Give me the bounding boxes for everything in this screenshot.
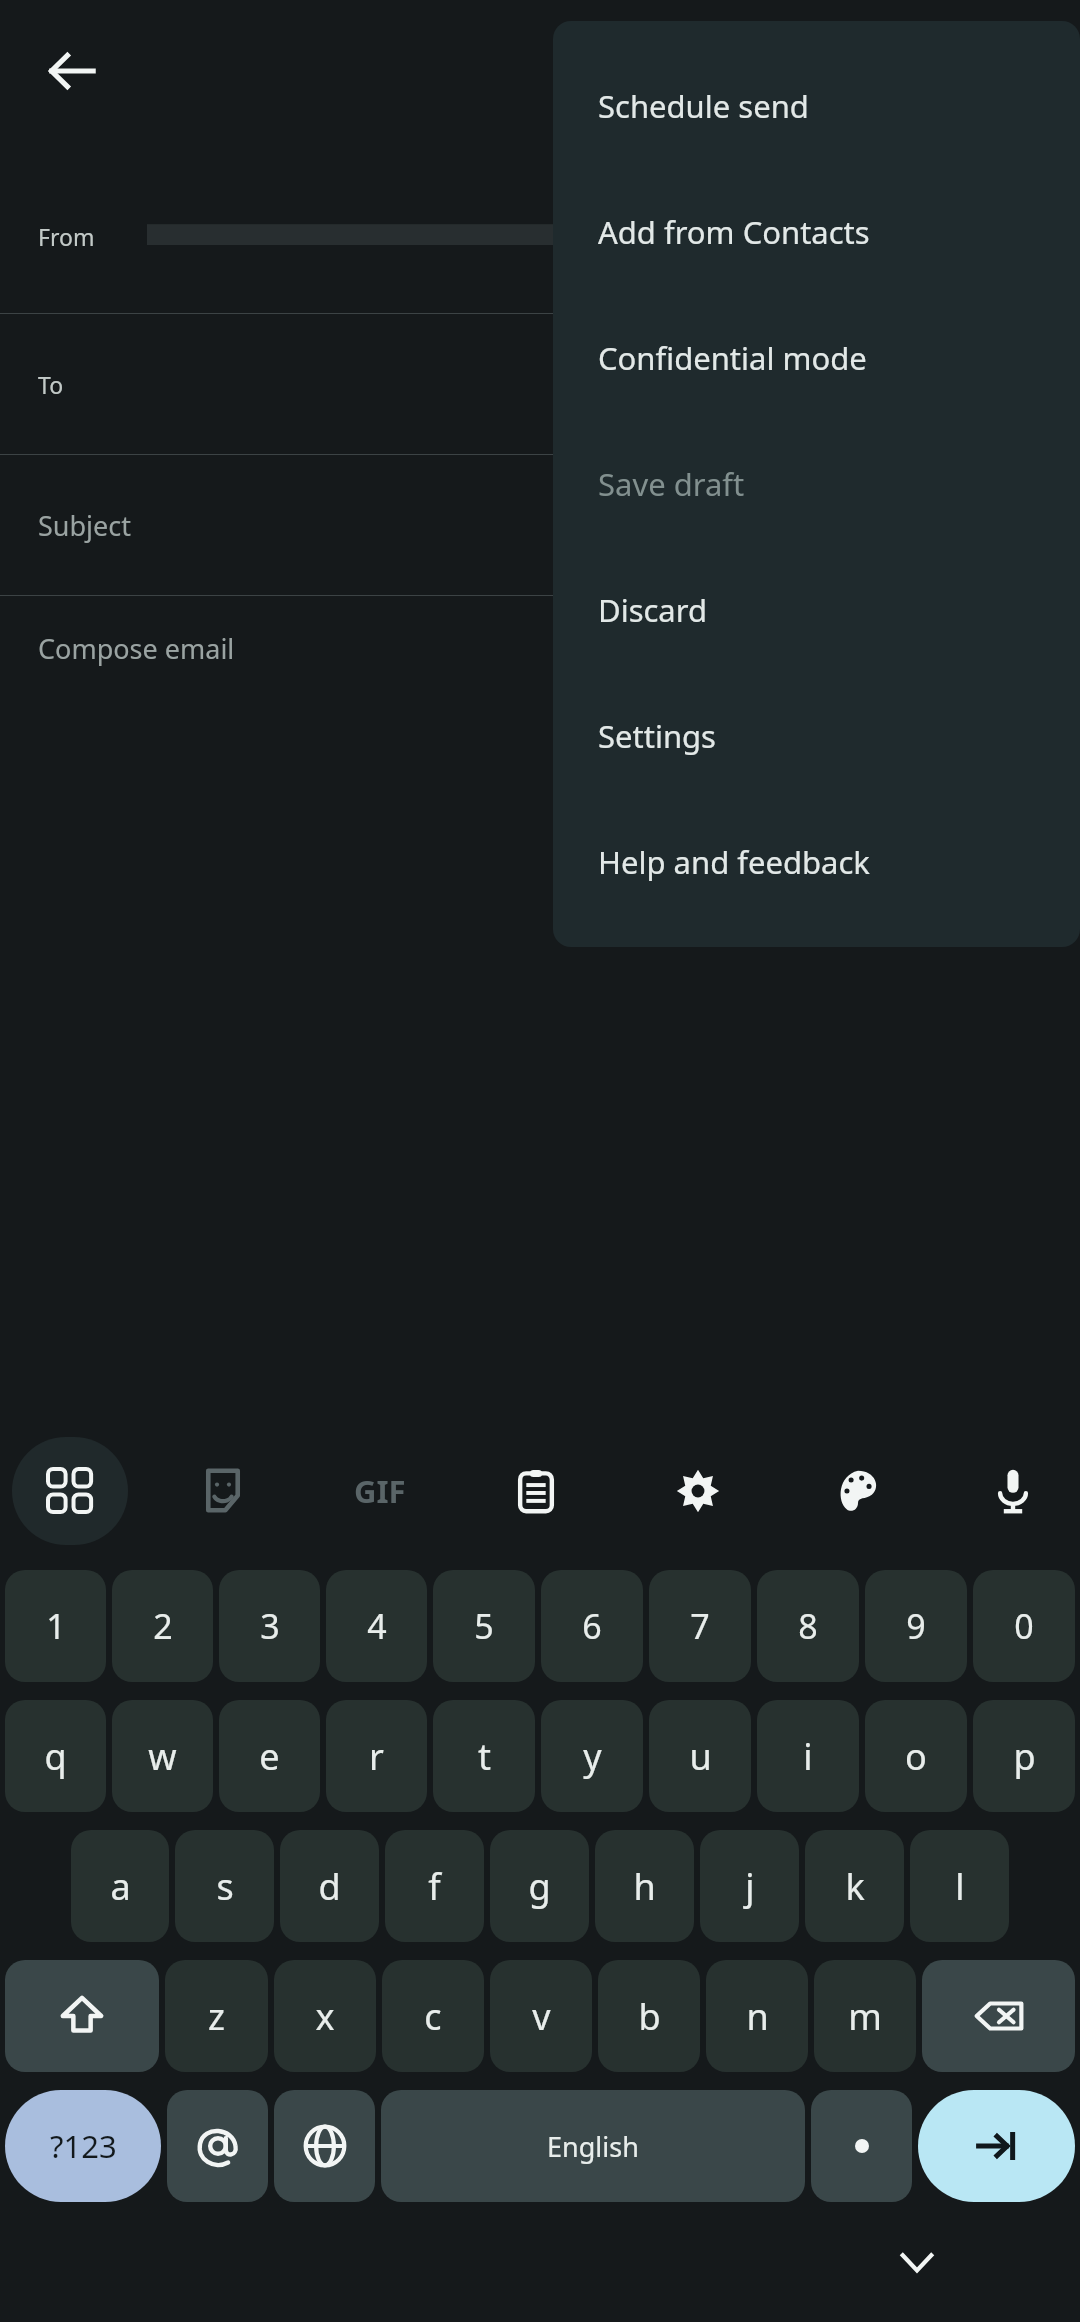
button[interactable]: j [700,1830,799,1942]
staticText: ?123 [50,2125,117,2167]
staticText: To [38,369,64,400]
button[interactable]: Confidential mode [553,295,1080,421]
button[interactable]: k [805,1830,904,1942]
staticText: 4 [367,1603,387,1649]
button[interactable]: f [385,1830,484,1942]
staticText: 5 [474,1603,494,1649]
button[interactable]: 9 [865,1570,967,1682]
button[interactable]: Subject [0,455,1080,595]
staticText: 0 [1014,1603,1034,1649]
button[interactable]: Compose email [0,596,1080,756]
button[interactable]: Settings [640,1437,756,1545]
staticText: w [148,1732,177,1781]
staticText: Discard [598,589,707,631]
button[interactable]: Apps [12,1437,128,1545]
staticText: Add from Contacts [598,211,870,253]
staticText: c [424,1992,442,2041]
staticText: GIF [354,1470,406,1512]
staticText: d [318,1862,341,1911]
button[interactable]: Add from Contacts [553,169,1080,295]
button[interactable]: i [757,1700,859,1812]
staticText: a [110,1862,131,1911]
button[interactable]: t [433,1700,535,1812]
button[interactable]: a [71,1830,169,1942]
button[interactable]: Backspace [922,1960,1075,2072]
button[interactable]: m [814,1960,916,2072]
button[interactable]: n [706,1960,808,2072]
button[interactable]: Stickers [165,1437,281,1545]
staticText: 9 [906,1603,926,1649]
button[interactable]: Switch language [274,2090,375,2202]
button[interactable]: 1 [5,1570,106,1682]
button[interactable]: Schedule send [553,43,1080,169]
staticText: y [583,1732,602,1781]
button[interactable]: To [0,314,1080,454]
button[interactable]: s [175,1830,274,1942]
staticText: l [955,1862,965,1911]
button[interactable]: r [326,1700,427,1812]
button[interactable]: Save draft [553,421,1080,547]
button[interactable]: 8 [757,1570,859,1682]
button[interactable]: 5 [433,1570,535,1682]
button[interactable]: y [541,1700,643,1812]
button[interactable]: l [910,1830,1009,1942]
button[interactable]: q [5,1700,106,1812]
staticText: g [528,1862,551,1911]
button[interactable]: p [973,1700,1075,1812]
button[interactable]: 2 [112,1570,213,1682]
button[interactable]: Period [811,2090,912,2202]
staticText: r [369,1732,384,1781]
button[interactable]: 7 [649,1570,751,1682]
button[interactable]: Voice input [955,1437,1071,1545]
staticText: v [532,1992,551,2041]
staticText: b [638,1992,661,2041]
button[interactable]: e [219,1700,320,1812]
button[interactable]: From [0,160,1080,313]
button[interactable]: Clipboard [478,1437,594,1545]
button[interactable]: At sign [167,2090,268,2202]
button[interactable]: v [490,1960,592,2072]
staticText: From [38,221,95,252]
button[interactable]: 0 [973,1570,1075,1682]
button[interactable]: English [381,2090,805,2202]
button[interactable]: 3 [219,1570,320,1682]
staticText: u [689,1732,712,1781]
staticText: 2 [153,1603,173,1649]
staticText: s [216,1862,234,1911]
staticText: Subject [38,507,132,544]
button[interactable]: Discard [553,547,1080,673]
button[interactable]: Navigate up [18,16,126,126]
staticText: 3 [260,1603,280,1649]
button[interactable]: b [598,1960,700,2072]
button[interactable]: Help and feedback [553,799,1080,925]
staticText: o [905,1732,927,1781]
staticText: z [208,1992,225,2041]
button[interactable]: ?123 [5,2090,161,2202]
button[interactable]: Hide keyboard [862,2207,972,2317]
staticText: e [259,1732,280,1781]
button[interactable]: Shift [5,1960,159,2072]
button[interactable]: Next [918,2090,1075,2202]
button[interactable]: h [595,1830,694,1942]
button[interactable]: d [280,1830,379,1942]
button[interactable]: c [382,1960,484,2072]
button[interactable]: z [165,1960,268,2072]
staticText: Schedule send [598,85,809,127]
button[interactable]: w [112,1700,213,1812]
button[interactable]: o [865,1700,967,1812]
button[interactable]: u [649,1700,751,1812]
button[interactable]: 4 [326,1570,427,1682]
staticText: x [315,1992,335,2041]
button[interactable]: GIF [322,1437,438,1545]
button[interactable]: Settings [553,673,1080,799]
staticText: 1 [46,1603,66,1649]
staticText: f [428,1862,441,1911]
button[interactable]: 6 [541,1570,643,1682]
staticText: Settings [598,715,716,757]
button[interactable]: Themes [800,1437,916,1545]
button[interactable]: x [274,1960,376,2072]
staticText: 6 [582,1603,602,1649]
button[interactable]: g [490,1830,589,1942]
staticText: h [633,1862,656,1911]
staticText: q [44,1732,67,1781]
